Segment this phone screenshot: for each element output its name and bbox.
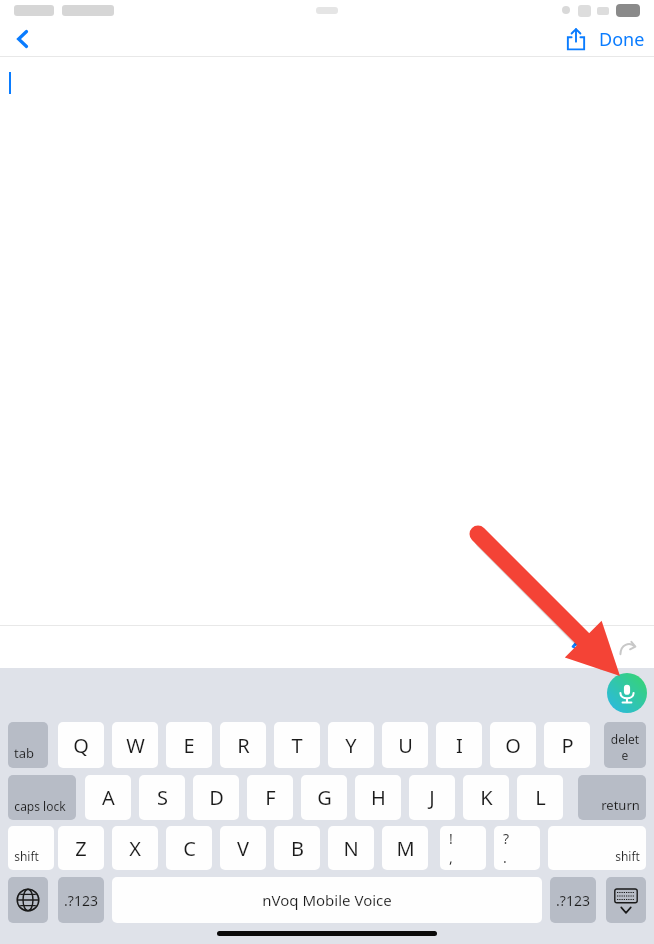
button[interactable]: N (328, 826, 374, 870)
button[interactable]: .?123 (58, 877, 104, 923)
staticText: V (237, 835, 249, 862)
staticText: C (183, 835, 196, 862)
staticText: W (126, 732, 145, 759)
staticText: P (561, 732, 574, 759)
button[interactable]: Z (58, 826, 104, 870)
staticText: ? (503, 829, 510, 848)
button[interactable]: V (220, 826, 266, 870)
staticText: T (291, 732, 303, 759)
button[interactable]: Redo (608, 630, 646, 666)
staticText: N (343, 835, 359, 862)
button[interactable]: Y (328, 722, 374, 768)
staticText: L (535, 784, 546, 811)
button[interactable]: F (247, 775, 293, 820)
staticText: return (601, 796, 640, 814)
button[interactable]: Voice input (607, 673, 647, 713)
staticText: U (398, 732, 413, 759)
button[interactable]: shift (8, 826, 54, 870)
staticText: shift (14, 848, 39, 864)
button[interactable]: .?123 (550, 877, 596, 923)
staticText: shift (615, 848, 640, 864)
button[interactable]: Hide keyboard (606, 877, 646, 923)
button[interactable]: tab (8, 722, 48, 768)
button[interactable]: R (220, 722, 266, 768)
button[interactable]: ! (440, 826, 486, 870)
button[interactable]: L (517, 775, 563, 820)
button[interactable]: J (409, 775, 455, 820)
staticText: R (237, 732, 250, 759)
staticText: G (317, 784, 332, 811)
staticText: F (265, 784, 276, 811)
staticText: M (396, 835, 415, 862)
staticText: .?123 (64, 891, 98, 910)
staticText: Done (599, 27, 645, 52)
button[interactable]: G (301, 775, 347, 820)
button[interactable]: W (112, 722, 158, 768)
button[interactable]: B (274, 826, 320, 870)
button[interactable]: Change keyboard language (8, 877, 48, 923)
button[interactable]: K (463, 775, 509, 820)
staticText: caps lock (14, 798, 66, 814)
button[interactable]: delete (604, 722, 646, 768)
staticText: tab (14, 744, 34, 762)
staticText: K (480, 784, 493, 811)
button[interactable]: caps lock (8, 775, 76, 820)
staticText: I (456, 732, 463, 759)
button[interactable]: P (544, 722, 590, 768)
button[interactable]: Share (558, 22, 594, 56)
staticText: S (157, 784, 168, 811)
button[interactable]: Undo (562, 630, 600, 666)
button[interactable]: O (490, 722, 536, 768)
button[interactable]: C (166, 826, 212, 870)
staticText: A (102, 784, 115, 811)
button[interactable]: S (139, 775, 185, 820)
staticText: X (129, 835, 141, 862)
staticText: Q (73, 732, 89, 759)
staticText: J (429, 784, 435, 811)
button[interactable]: A (85, 775, 131, 820)
staticText: nVoq Mobile Voice (262, 890, 392, 910)
staticText: H (371, 784, 386, 811)
staticText: , (449, 848, 453, 867)
staticText: . (503, 848, 507, 867)
button[interactable]: ? (494, 826, 540, 870)
staticText: O (505, 732, 521, 759)
staticText: Y (345, 732, 357, 759)
button[interactable]: return (578, 775, 646, 820)
button[interactable]: D (193, 775, 239, 820)
button[interactable]: T (274, 722, 320, 768)
button[interactable]: U (382, 722, 428, 768)
staticText: E (183, 732, 195, 759)
staticText: Z (75, 835, 87, 862)
button[interactable]: E (166, 722, 212, 768)
button[interactable]: shift (548, 826, 646, 870)
button[interactable]: I (436, 722, 482, 768)
button[interactable]: M (382, 826, 428, 870)
button[interactable]: Done (596, 22, 648, 56)
staticText: ! (449, 829, 453, 848)
button[interactable]: nVoq Mobile Voice (112, 877, 542, 923)
button[interactable]: Back (0, 22, 46, 56)
staticText: D (209, 784, 224, 811)
staticText: delete (609, 731, 641, 763)
staticText: .?123 (556, 891, 590, 910)
staticText: B (291, 835, 304, 862)
button[interactable]: H (355, 775, 401, 820)
button[interactable]: X (112, 826, 158, 870)
button[interactable]: Q (58, 722, 104, 768)
